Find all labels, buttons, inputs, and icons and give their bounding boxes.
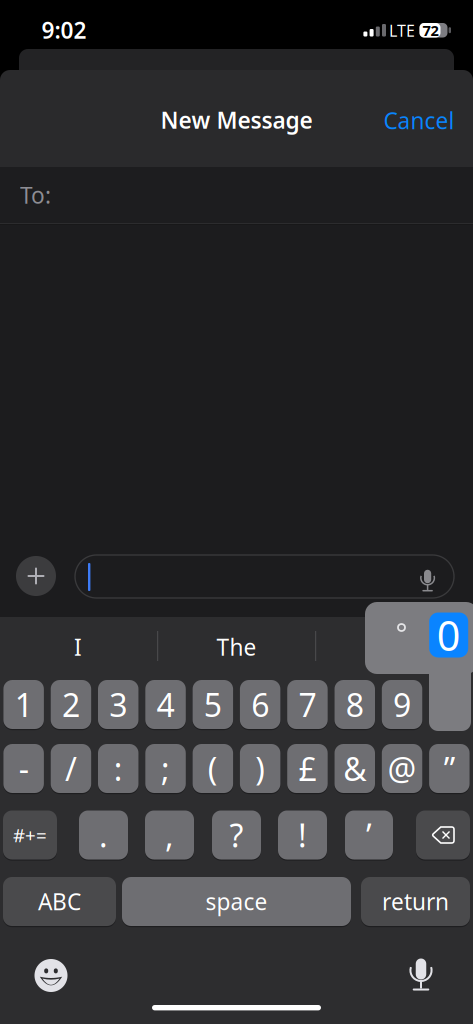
button[interactable]: Cancel xyxy=(383,105,454,135)
button[interactable]: 3 xyxy=(98,680,138,731)
staticText: ) xyxy=(255,747,265,790)
staticText: New Message xyxy=(160,105,312,135)
staticText: 4 xyxy=(156,683,174,726)
button[interactable]: 5 xyxy=(193,680,233,731)
button[interactable] xyxy=(16,556,56,596)
button[interactable]: 2 xyxy=(51,680,91,731)
button[interactable]: 0 xyxy=(429,612,468,657)
staticText: I xyxy=(74,632,82,662)
button[interactable]: ( xyxy=(193,744,233,795)
button[interactable]: ! xyxy=(278,810,327,861)
button[interactable]: return xyxy=(361,877,470,928)
button[interactable]: ABC xyxy=(3,877,116,928)
staticText: @ xyxy=(387,747,416,790)
button[interactable]: ? xyxy=(212,810,261,861)
button[interactable]: The xyxy=(166,624,306,670)
staticText: 8 xyxy=(346,683,364,726)
staticText: , xyxy=(165,814,174,856)
button[interactable] xyxy=(416,810,470,861)
button[interactable]: space xyxy=(122,877,351,928)
button[interactable]: 6 xyxy=(240,680,280,731)
staticText: 2 xyxy=(62,683,80,726)
staticText: ABC xyxy=(38,886,81,916)
staticText: - xyxy=(19,747,29,790)
button[interactable]: : xyxy=(98,744,138,795)
button[interactable]: / xyxy=(51,744,91,795)
button[interactable]: @ xyxy=(382,744,422,795)
button[interactable]: To: xyxy=(20,167,473,223)
staticText: & xyxy=(343,747,366,790)
staticText: #+= xyxy=(13,823,47,847)
staticText: / xyxy=(65,747,77,790)
button[interactable]: ) xyxy=(240,744,280,795)
staticText: Cancel xyxy=(383,105,454,135)
button[interactable] xyxy=(33,957,69,993)
staticText: 72 xyxy=(422,20,438,40)
staticText: The xyxy=(216,632,256,662)
button[interactable]: - xyxy=(3,744,44,795)
staticText: 9 xyxy=(393,683,411,726)
button[interactable]: 1 xyxy=(3,680,44,731)
staticText: . xyxy=(99,814,108,856)
staticText: space xyxy=(205,886,267,916)
button[interactable]: . xyxy=(79,810,128,861)
button[interactable]: I xyxy=(8,624,148,670)
button[interactable]: 9 xyxy=(382,680,422,731)
button[interactable]: 4 xyxy=(145,680,186,731)
button[interactable] xyxy=(414,562,442,590)
staticText: 0 xyxy=(437,608,461,662)
staticText: 5 xyxy=(204,683,222,726)
staticText: 9:02 xyxy=(41,15,86,45)
staticText: ! xyxy=(298,814,307,856)
staticText: To: xyxy=(20,180,51,210)
staticText: ” xyxy=(444,747,455,790)
staticText: : xyxy=(114,747,123,790)
button[interactable]: 8 xyxy=(334,680,375,731)
button[interactable]: 7 xyxy=(287,680,328,731)
button[interactable]: ” xyxy=(429,744,470,795)
button[interactable]: ’ xyxy=(345,810,393,861)
staticText: ’ xyxy=(366,814,372,856)
staticText: ? xyxy=(229,814,243,856)
staticText: 7 xyxy=(298,683,316,726)
staticText: 1 xyxy=(15,683,33,726)
button[interactable]: ; xyxy=(145,744,186,795)
staticText: 6 xyxy=(251,683,269,726)
button[interactable] xyxy=(403,957,439,993)
button[interactable]: #+= xyxy=(3,810,57,861)
staticText: ( xyxy=(208,747,218,790)
staticText: 3 xyxy=(109,683,127,726)
button[interactable]: , xyxy=(145,810,194,861)
staticText: £ xyxy=(298,747,316,790)
button[interactable]: £ xyxy=(287,744,328,795)
button[interactable]: & xyxy=(334,744,375,795)
staticText: ; xyxy=(161,747,170,790)
staticText: LTE xyxy=(389,20,415,41)
staticText: return xyxy=(382,886,449,916)
